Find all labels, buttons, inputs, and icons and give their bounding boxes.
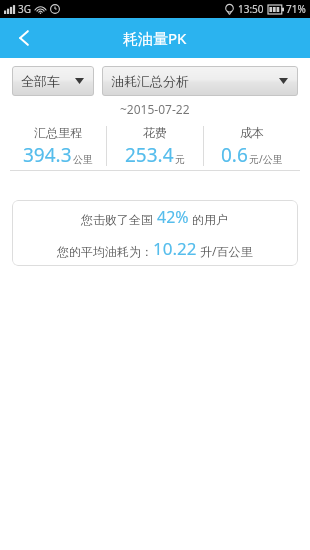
- staticText: 油耗汇总分析: [111, 73, 189, 89]
- staticText: 您击败了全国: [81, 211, 157, 227]
- staticText: 3G: [18, 2, 31, 16]
- button[interactable]: 油耗汇总分析: [102, 66, 298, 96]
- staticText: 汇总里程: [34, 125, 82, 140]
- button[interactable]: 成本: [204, 125, 300, 168]
- staticText: 花费: [143, 125, 167, 140]
- staticText: 的用户: [189, 211, 229, 227]
- staticText: ~2015-07-22: [120, 101, 190, 117]
- staticText: 耗油量PK: [123, 28, 187, 48]
- staticText: 公里: [73, 153, 93, 166]
- staticText: 元: [175, 153, 185, 166]
- staticText: 394.3: [23, 142, 72, 168]
- staticText: 0.6: [221, 142, 248, 168]
- staticText: 您的平均油耗为：: [57, 244, 153, 259]
- staticText: 253.4: [125, 142, 174, 168]
- staticText: 10.22: [153, 237, 197, 260]
- button[interactable]: 全部车: [12, 66, 94, 96]
- staticText: 全部车: [21, 73, 60, 89]
- staticText: 成本: [240, 125, 264, 140]
- staticText: 升/百公里: [197, 243, 253, 259]
- staticText: 42%: [157, 206, 189, 228]
- button[interactable]: 花费: [107, 125, 203, 168]
- staticText: 元/公里: [249, 152, 283, 166]
- button[interactable]: Back: [0, 18, 48, 58]
- button[interactable]: 您击败了全国: [12, 200, 298, 266]
- staticText: 71%: [286, 2, 306, 16]
- button[interactable]: 汇总里程: [10, 125, 106, 168]
- staticText: 13:50: [238, 2, 264, 16]
